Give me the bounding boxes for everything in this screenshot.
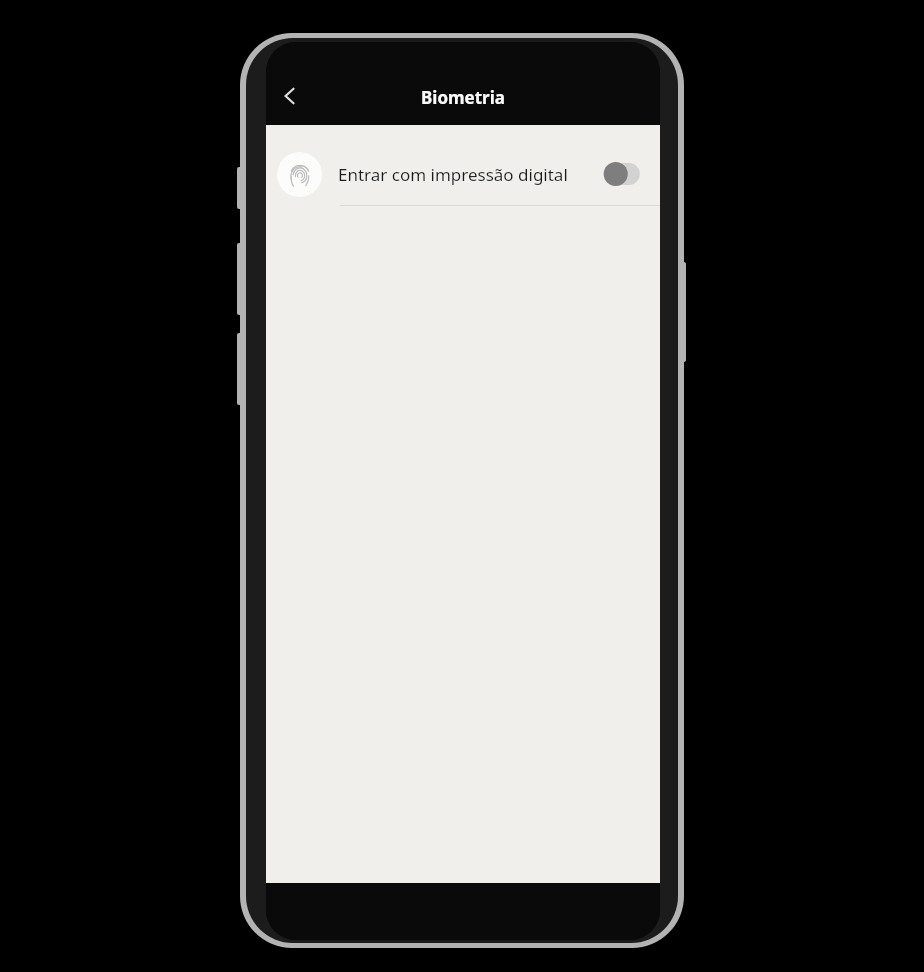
button[interactable]: Entrar com impressão digital bbox=[266, 143, 660, 205]
staticText: Biometria bbox=[266, 86, 660, 109]
button[interactable]: Toggle fingerprint login bbox=[602, 159, 646, 189]
staticText: Entrar com impressão digital bbox=[338, 163, 568, 186]
button[interactable]: Back bbox=[270, 76, 310, 116]
